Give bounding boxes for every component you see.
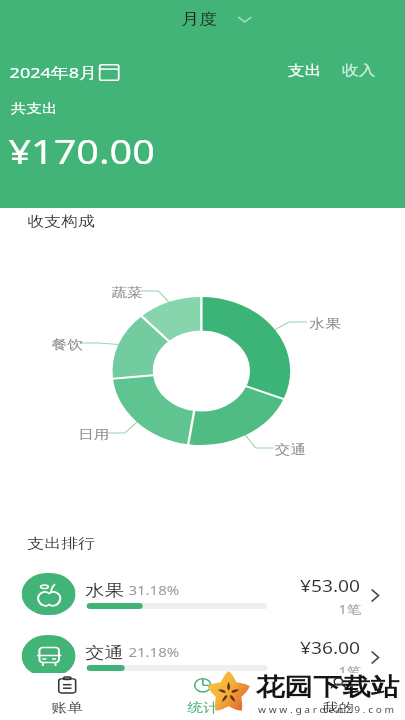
staticText: 1笔 [338, 601, 361, 617]
staticText: 收支构成 [28, 213, 95, 231]
other: Details [371, 589, 379, 602]
staticText: 我的 [323, 699, 354, 715]
staticText: 31.18% [128, 582, 180, 599]
button[interactable]: 月度 [178, 7, 256, 32]
staticText: 支出排行 [28, 535, 95, 553]
button[interactable]: 账单 [0, 673, 134, 715]
staticText: 水果 [310, 315, 341, 331]
staticText: ¥36.00 [300, 637, 361, 659]
staticText: 账单 [52, 699, 83, 715]
staticText: ¥53.00 [300, 575, 361, 597]
staticText: 交通 [85, 643, 124, 663]
button[interactable]: 2024年8月 [10, 62, 120, 82]
button[interactable]: 支出 [284, 59, 325, 83]
staticText: w w w . g a r d e n 2 9 . c o m [258, 704, 395, 716]
staticText: 日用 [78, 426, 109, 442]
staticText: 餐饮 [52, 336, 83, 352]
button[interactable]: 水果 [0, 563, 405, 621]
staticText: 月度 [181, 10, 217, 29]
button[interactable]: 收入 [338, 59, 379, 83]
other: Pick month [98, 64, 120, 81]
button[interactable]: 交通 [0, 625, 405, 683]
staticText: 水果 [85, 581, 124, 601]
staticText: 蔬菜 [112, 284, 143, 300]
staticText: 1笔 [338, 663, 361, 679]
staticText: 共支出 [11, 100, 58, 116]
staticText: 支出 [288, 62, 322, 80]
staticText: 统计 [187, 699, 218, 715]
staticText: 收入 [342, 62, 376, 80]
staticText: 花园下载站 [256, 672, 400, 702]
staticText: 21.18% [128, 644, 180, 661]
button[interactable]: 我的 [270, 673, 405, 715]
staticText: 2024年8月 [10, 62, 97, 82]
staticText: ¥170.00 [8, 129, 156, 174]
button[interactable]: 统计 [134, 673, 270, 715]
staticText: 交通 [275, 441, 306, 457]
other: Details [371, 651, 379, 664]
